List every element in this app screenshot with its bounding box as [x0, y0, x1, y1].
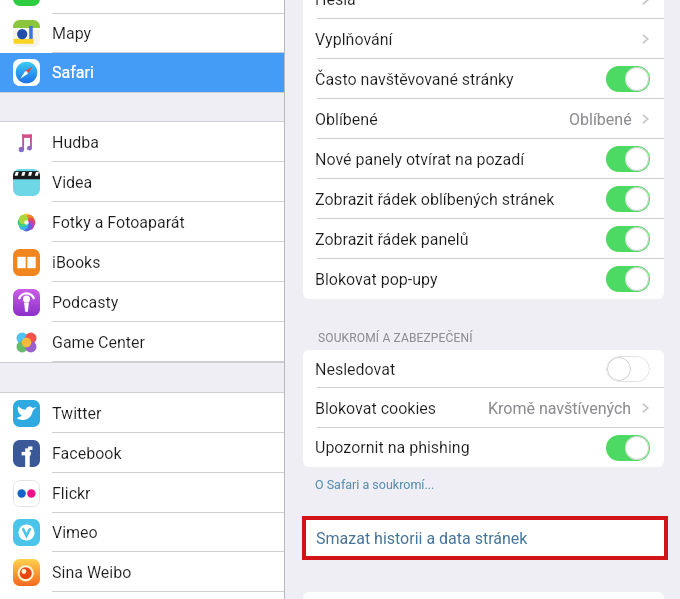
- button[interactable]: Videa: [0, 162, 284, 202]
- button[interactable]: Fotky a Fotoaparát: [0, 202, 284, 242]
- staticText: Blokovat pop-upy: [315, 270, 438, 289]
- staticText: Hudba: [52, 133, 99, 152]
- staticText: Flickr: [52, 484, 91, 503]
- button[interactable]: Často navštěvované stránky, zapnuto: [606, 66, 650, 92]
- button[interactable]: Nesledovat, vypnuto: [606, 356, 650, 382]
- staticText: Mapy: [52, 24, 92, 43]
- button[interactable]: Oblíbené: [303, 99, 664, 139]
- staticText: O Safari a soukromí...: [315, 477, 435, 492]
- staticText: Vyplňování: [315, 30, 393, 49]
- staticText: Nové panely otvírat na pozadí: [315, 150, 525, 169]
- staticText: Videa: [52, 173, 93, 192]
- staticText: Twitter: [52, 404, 102, 423]
- button[interactable]: Nové panely otvírat na pozadí: [303, 139, 664, 179]
- staticText: Vimeo: [52, 523, 98, 542]
- staticText: Oblíbené: [315, 110, 378, 129]
- staticText: Zobrazit řádek oblíbených stránek: [315, 190, 555, 209]
- button[interactable]: Zobrazit řádek panelů: [303, 219, 664, 259]
- staticText: Často navštěvované stránky: [315, 70, 514, 89]
- staticText: SOUKROMÍ A ZABEZPEČENÍ: [318, 331, 473, 345]
- button[interactable]: Game Center: [0, 322, 284, 362]
- staticText: iBooks: [52, 253, 101, 272]
- staticText: Game Center: [52, 333, 145, 352]
- staticText: Zobrazit řádek panelů: [315, 230, 469, 249]
- button[interactable]: Upozornit na phishing, zapnuto: [606, 435, 650, 461]
- button[interactable]: Podcasty: [0, 282, 284, 322]
- staticText: Fotky a Fotoaparát: [52, 213, 185, 232]
- button[interactable]: Vimeo: [0, 513, 284, 552]
- button[interactable]: Hesla: [303, 0, 664, 19]
- staticText: Smazat historii a data stránek: [316, 529, 528, 548]
- button[interactable]: Mapy: [0, 14, 284, 53]
- button[interactable]: Facebook: [0, 433, 284, 473]
- button[interactable]: Zobrazit řádek oblíbených stránek: [303, 179, 664, 219]
- staticText: Upozornit na phishing: [315, 438, 470, 457]
- button[interactable]: Často navštěvované stránky: [303, 59, 664, 99]
- staticText: Hesla: [315, 0, 356, 9]
- button[interactable]: Vyplňování: [303, 19, 664, 59]
- button[interactable]: Blokovat pop-upy: [303, 259, 664, 299]
- button[interactable]: Blokovat cookies: [303, 388, 664, 428]
- button[interactable]: O Safari a soukromí...: [315, 477, 435, 492]
- button[interactable]: Flickr: [0, 473, 284, 513]
- button[interactable]: Zobrazit řádek panelů, zapnuto: [606, 226, 650, 252]
- button[interactable]: Nové panely otvírat na pozadí, zapnuto: [606, 146, 650, 172]
- staticText: Oblíbené: [569, 110, 632, 129]
- button[interactable]: Zobrazit řádek oblíbených stránek, zapnu…: [606, 186, 650, 212]
- button[interactable]: Smazat historii a data stránek: [306, 520, 664, 556]
- staticText: Kromě navštívených: [488, 399, 632, 418]
- staticText: Blokovat cookies: [315, 399, 437, 418]
- button[interactable]: Nesledovat: [303, 350, 664, 388]
- staticText: Facebook: [52, 444, 122, 463]
- staticText: Nesledovat: [315, 360, 396, 379]
- button[interactable]: Safari: [0, 53, 284, 92]
- staticText: Safari: [52, 63, 94, 82]
- staticText: Podcasty: [52, 293, 119, 312]
- button[interactable]: Upozornit na phishing: [303, 428, 664, 467]
- staticText: Sina Weibo: [52, 563, 132, 582]
- button[interactable]: Twitter: [0, 393, 284, 433]
- button[interactable]: Hudba: [0, 122, 284, 162]
- button[interactable]: Sina Weibo: [0, 552, 284, 592]
- button[interactable]: Blokovat pop-upy, zapnuto: [606, 266, 650, 292]
- button[interactable]: iBooks: [0, 242, 284, 282]
